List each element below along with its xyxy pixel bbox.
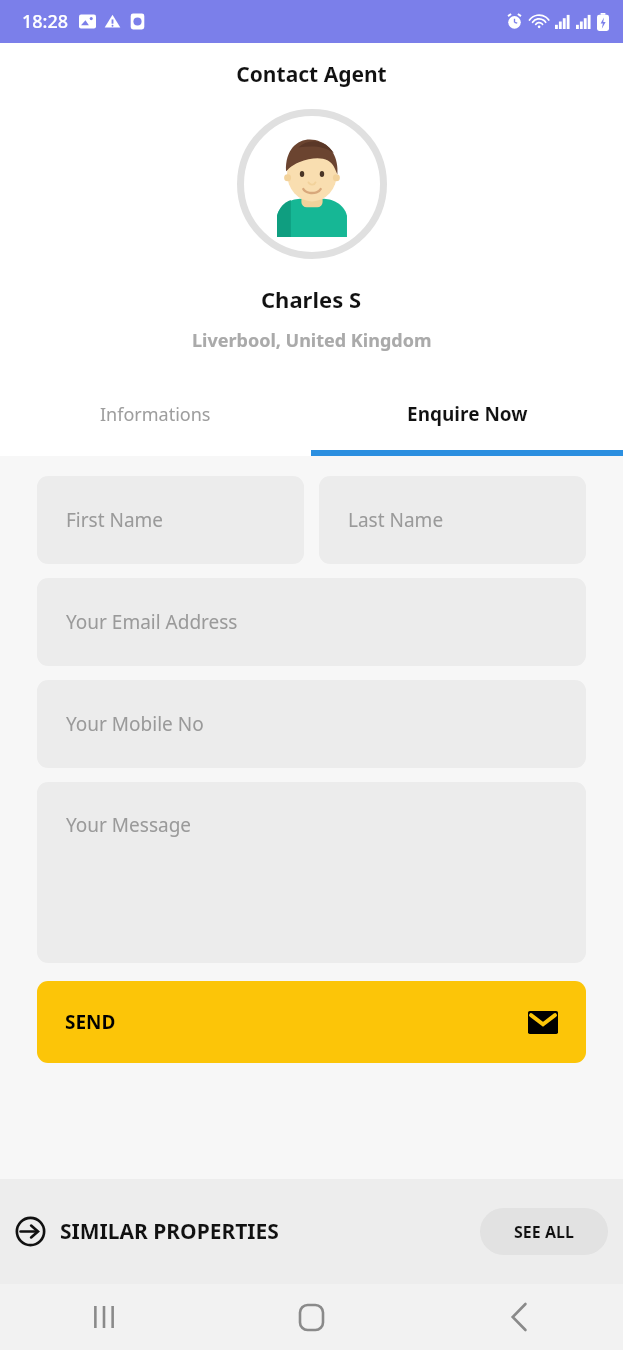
staticText: Liverbool, United Kingdom [192, 328, 432, 353]
staticText: Your Email Address [66, 609, 238, 635]
staticText: Informations [100, 402, 211, 427]
button[interactable]: Last Name [319, 476, 586, 564]
button[interactable]: SEE ALL [480, 1208, 608, 1255]
staticText: Your Mobile No [66, 711, 204, 737]
staticText: Last Name [348, 507, 444, 533]
button[interactable]: Informations [0, 387, 311, 441]
staticText: SIMILAR PROPERTIES [60, 1217, 279, 1246]
staticText: SEND [65, 1009, 116, 1035]
staticText: 18:28 [22, 9, 69, 34]
staticText: Contact Agent [236, 60, 387, 89]
staticText: SEE ALL [514, 1221, 574, 1243]
button[interactable]: Enquire Now [311, 387, 623, 441]
staticText: Enquire Now [407, 401, 528, 427]
button[interactable]: Home [207, 1284, 415, 1350]
button[interactable]: Your Message [37, 782, 586, 963]
button[interactable]: Your Email Address [37, 578, 586, 666]
button[interactable]: Your Mobile No [37, 680, 586, 768]
button[interactable]: Similar properties [15, 1216, 480, 1247]
button[interactable]: SEND [37, 981, 586, 1063]
button[interactable]: First Name [37, 476, 304, 564]
other: Similar properties [15, 1216, 46, 1247]
button[interactable]: Back [415, 1284, 623, 1350]
staticText: Charles S [261, 284, 362, 314]
button[interactable]: Recents [0, 1284, 207, 1350]
staticText: First Name [66, 507, 164, 533]
staticText: Your Message [66, 812, 192, 838]
